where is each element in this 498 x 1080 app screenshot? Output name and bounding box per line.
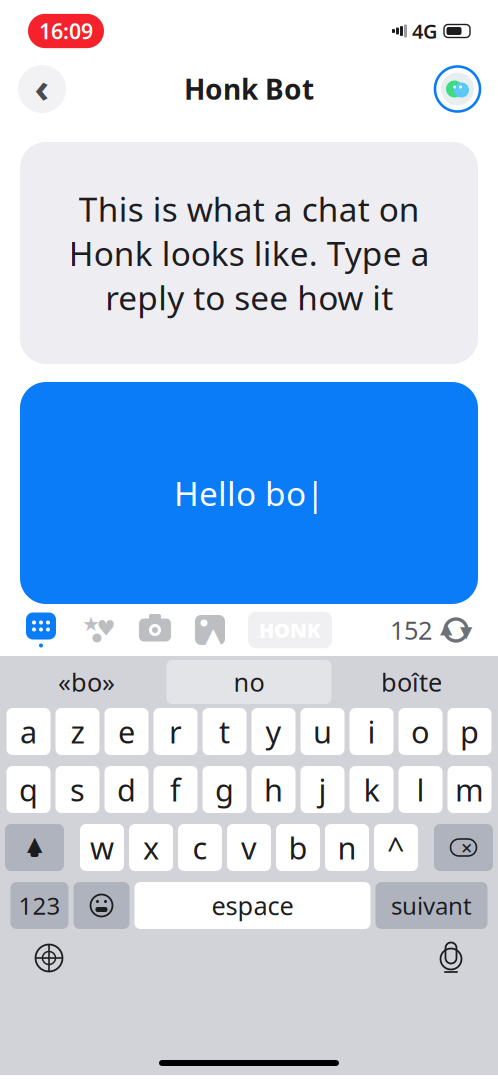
button[interactable]: Change keyboard (34, 943, 64, 973)
staticText: u (313, 711, 332, 752)
staticText: v (241, 827, 257, 868)
button[interactable]: c (178, 824, 222, 871)
staticText: 152 (390, 613, 432, 647)
staticText: k (363, 769, 379, 810)
staticText: j (318, 769, 326, 810)
button[interactable]: a (6, 708, 50, 755)
staticText: o (411, 711, 430, 752)
button[interactable]: Back (18, 62, 66, 115)
button[interactable]: «bo» (6, 660, 166, 704)
staticText: a (20, 711, 37, 752)
staticText: f (170, 769, 181, 810)
button[interactable]: l (398, 766, 442, 813)
button[interactable]: u (300, 708, 344, 755)
button[interactable]: Emoji (73, 882, 129, 929)
button[interactable]: Photos (194, 614, 226, 646)
staticText: l (416, 769, 424, 810)
staticText: g (215, 769, 234, 810)
staticText: z (70, 711, 84, 752)
staticText: h (264, 769, 283, 810)
staticText: Hello bo| (174, 471, 324, 515)
staticText: 123 (18, 890, 60, 921)
button[interactable]: v (227, 824, 271, 871)
staticText: × (461, 834, 472, 861)
staticText: ^ (387, 827, 405, 868)
button[interactable]: r (153, 708, 197, 755)
button[interactable]: Refresh (440, 615, 472, 645)
staticText: p (460, 711, 479, 752)
button[interactable]: HONK (248, 612, 332, 648)
staticText: b (288, 827, 307, 868)
staticText: e (118, 711, 135, 752)
button[interactable]: n (325, 824, 369, 871)
staticText: ▲ (27, 832, 42, 855)
staticText: Honk Bot (184, 70, 314, 108)
button[interactable]: m (447, 766, 491, 813)
staticText: w (90, 827, 114, 868)
button[interactable]: x (129, 824, 173, 871)
button[interactable]: h (251, 766, 295, 813)
staticText: «bo» (58, 665, 115, 699)
button[interactable]: t (202, 708, 246, 755)
button[interactable]: p (447, 708, 491, 755)
button[interactable]: w (80, 824, 124, 871)
button[interactable]: Camera (138, 614, 172, 646)
button[interactable]: Profile (435, 66, 480, 111)
staticText: x (143, 827, 159, 868)
button[interactable]: k (349, 766, 393, 813)
button[interactable]: Shift (5, 824, 64, 871)
staticText: t (219, 711, 230, 752)
button[interactable]: Delete (434, 824, 493, 871)
staticText: ‹ (34, 60, 49, 113)
button[interactable]: boîte (331, 660, 491, 704)
button[interactable]: Keyboard (26, 612, 56, 647)
staticText: s (70, 769, 85, 810)
button[interactable]: d (104, 766, 148, 813)
staticText: ♥ (96, 616, 115, 640)
staticText: ★ (82, 613, 100, 635)
staticText: i (367, 711, 375, 752)
button[interactable]: no (166, 660, 331, 704)
staticText: This is what a chat on Honk looks like. … (68, 187, 429, 319)
button[interactable]: b (276, 824, 320, 871)
staticText: c (192, 827, 207, 868)
button[interactable]: o (398, 708, 442, 755)
button[interactable]: Stickers (82, 614, 116, 646)
staticText: m (455, 769, 484, 810)
staticText: ▲ (204, 623, 221, 649)
staticText: espace (211, 889, 293, 922)
staticText: no (233, 665, 264, 699)
staticText: r (169, 711, 182, 752)
staticText: 16:09 (39, 17, 93, 45)
button[interactable]: z (55, 708, 99, 755)
button[interactable]: g (202, 766, 246, 813)
button[interactable]: Dictate (438, 941, 464, 975)
button[interactable]: e (104, 708, 148, 755)
button[interactable]: i (349, 708, 393, 755)
button[interactable]: f (153, 766, 197, 813)
button[interactable]: q (6, 766, 50, 813)
button[interactable]: ^ (374, 824, 418, 871)
staticText: 4G (412, 18, 438, 44)
staticText: HONK (259, 617, 321, 643)
staticText: ▼ (460, 623, 472, 641)
staticText: q (19, 769, 38, 810)
button[interactable]: y (251, 708, 295, 755)
staticText: y (265, 711, 281, 752)
staticText: n (337, 827, 356, 868)
button[interactable]: s (55, 766, 99, 813)
button[interactable]: espace (134, 882, 370, 929)
staticText: ▲ (440, 619, 452, 637)
staticText: d (117, 769, 136, 810)
staticText: boîte (381, 665, 442, 699)
staticText: suivant (391, 890, 472, 921)
button[interactable]: 123 (10, 882, 68, 929)
button[interactable]: j (300, 766, 344, 813)
button[interactable]: suivant (375, 882, 487, 929)
